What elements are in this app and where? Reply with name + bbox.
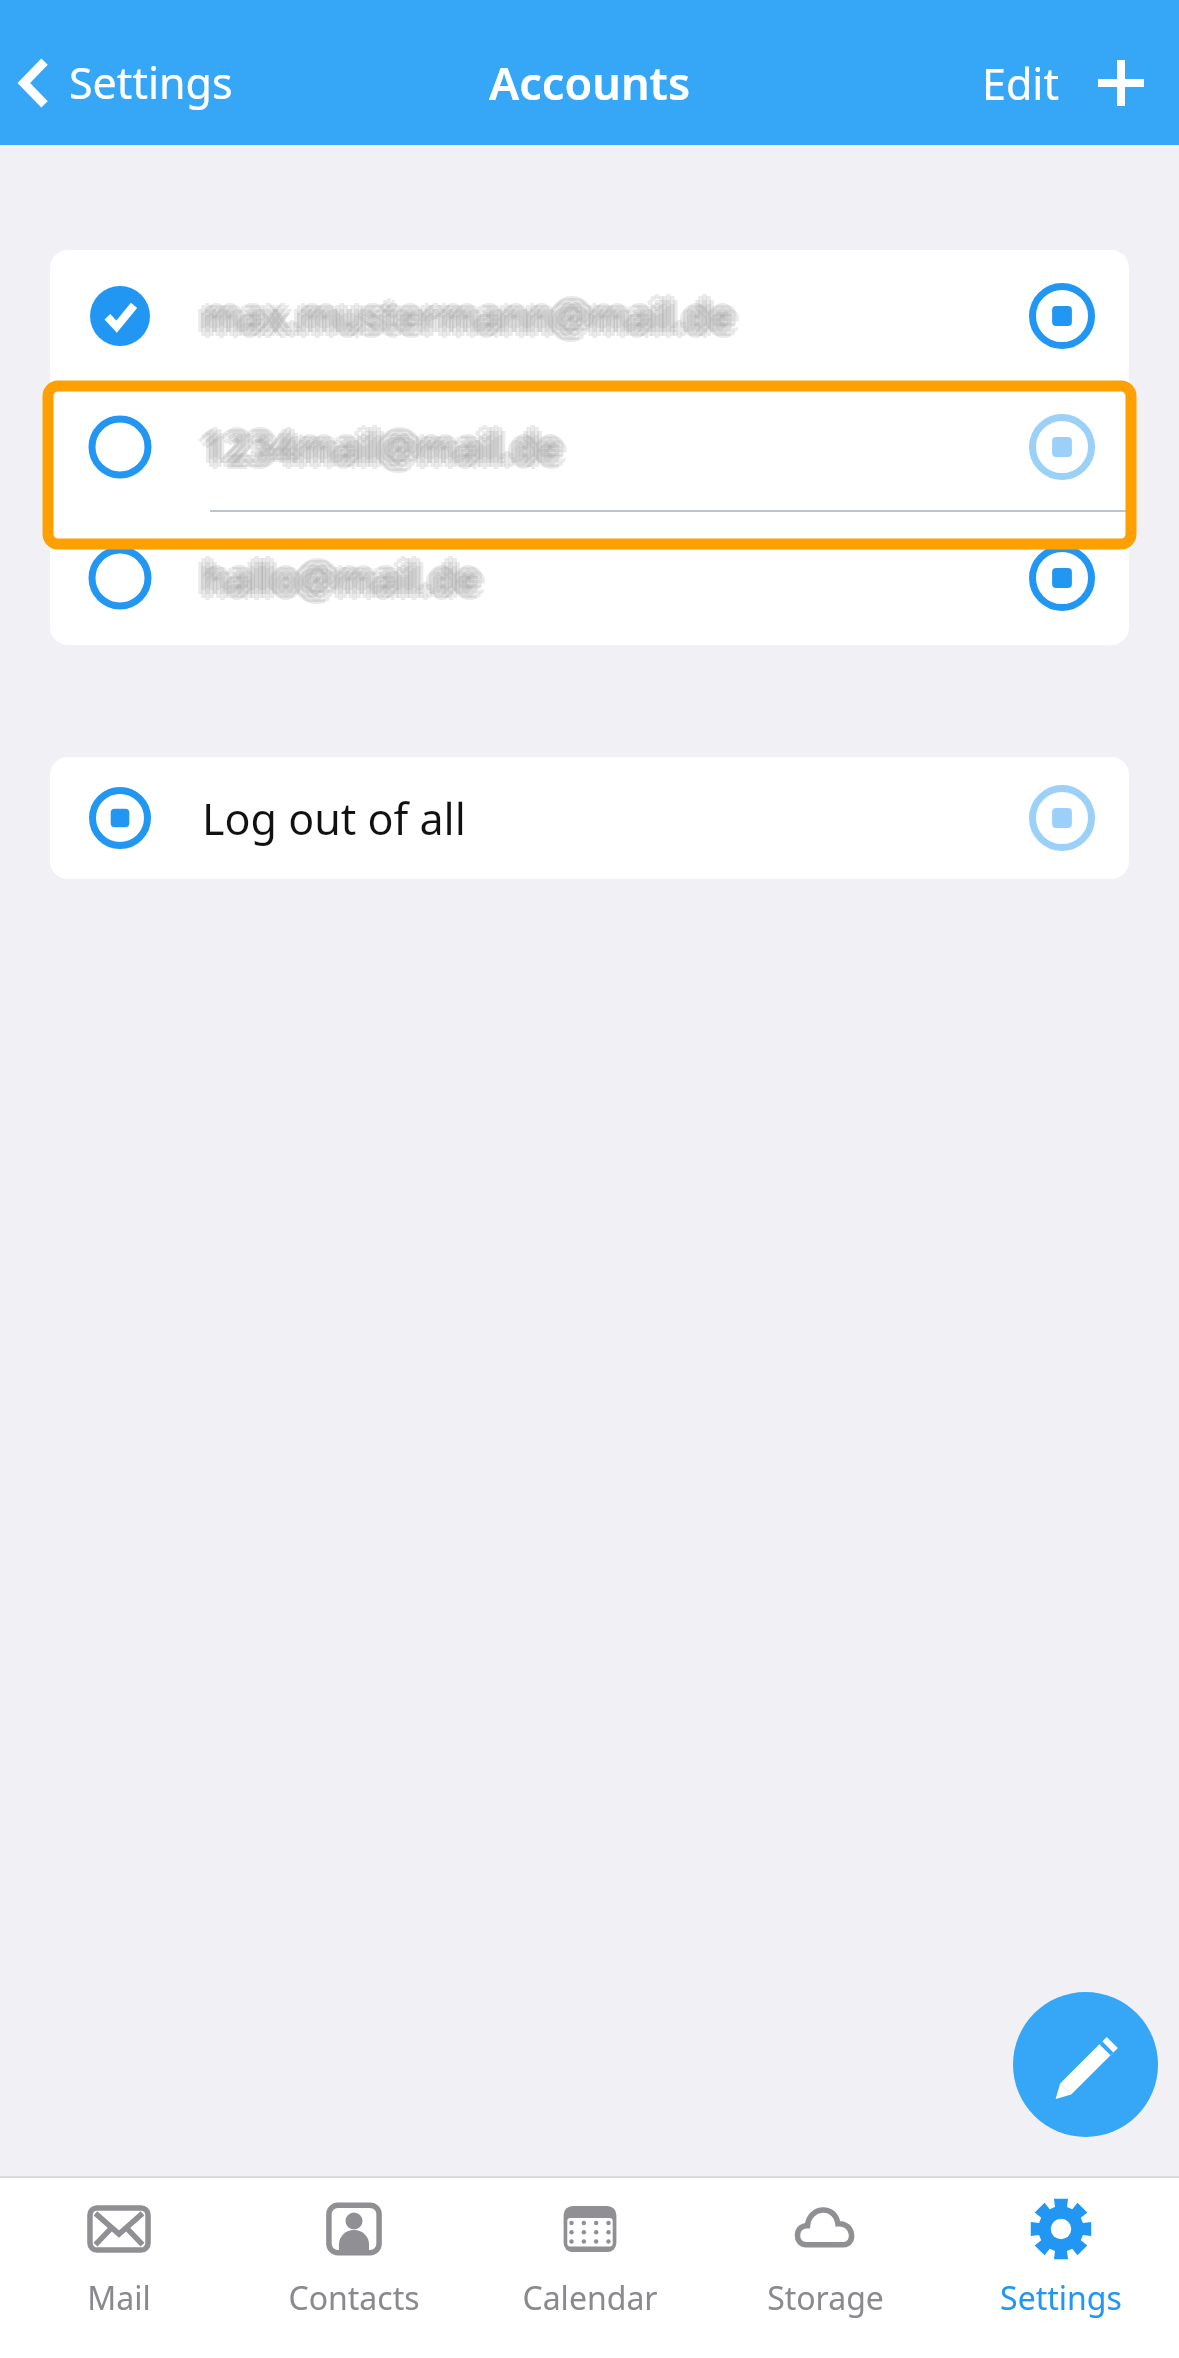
- staticText: Mail: [87, 2276, 151, 2320]
- staticText: hallo@mail.de: [206, 546, 484, 602]
- staticText: Edit: [982, 54, 1059, 113]
- staticText: 1234mail@mail.de: [206, 423, 566, 479]
- button[interactable]: Log out: [1007, 261, 1117, 371]
- staticText: max.mustermann@mail.de: [206, 284, 738, 340]
- button[interactable]: Settings: [943, 2178, 1178, 2358]
- other: Select account: [86, 544, 154, 612]
- button[interactable]: Compose: [1013, 1992, 1158, 2137]
- other: Select account: [86, 413, 154, 481]
- staticText: max.mustermann@mail.de: [209, 288, 741, 344]
- staticText: max.mustermann@mail.de: [202, 282, 734, 338]
- button[interactable]: Select account: [50, 381, 1129, 512]
- staticText: 1234mail@mail.de: [198, 423, 558, 479]
- staticText: max.mustermann@mail.de: [202, 294, 734, 350]
- button[interactable]: Select account: [50, 512, 1129, 643]
- staticText: max.mustermann@mail.de: [198, 292, 730, 348]
- staticText: 1234mail@mail.de: [206, 415, 566, 471]
- staticText: hallo@mail.de: [202, 556, 480, 612]
- button[interactable]: Selected account: [50, 250, 1129, 381]
- staticText: 1234mail@mail.de: [202, 413, 562, 469]
- staticText: Settings: [69, 53, 233, 112]
- staticText: hallo@mail.de: [198, 554, 476, 610]
- staticText: Settings: [1000, 2276, 1122, 2320]
- button[interactable]: Add account: [1073, 35, 1169, 131]
- staticText: max.mustermann@mail.de: [195, 288, 727, 344]
- staticText: hallo@mail.de: [202, 544, 480, 600]
- staticText: 1234mail@mail.de: [202, 419, 562, 475]
- staticText: 1234mail@mail.de: [195, 419, 555, 475]
- staticText: 1234mail@mail.de: [202, 425, 562, 481]
- staticText: hallo@mail.de: [206, 554, 484, 610]
- button[interactable]: Log out: [1007, 523, 1117, 633]
- button[interactable]: Settings: [0, 45, 247, 120]
- staticText: hallo@mail.de: [202, 550, 480, 606]
- button[interactable]: Log out of all: [50, 757, 1129, 879]
- staticText: Contacts: [288, 2276, 420, 2320]
- button[interactable]: Calendar: [472, 2178, 707, 2358]
- staticText: Calendar: [522, 2276, 658, 2320]
- button[interactable]: Contacts: [236, 2178, 471, 2358]
- staticText: hallo@mail.de: [209, 550, 487, 606]
- staticText: 1234mail@mail.de: [198, 415, 558, 471]
- staticText: max.mustermann@mail.de: [198, 284, 730, 340]
- staticText: 1234mail@mail.de: [209, 419, 569, 475]
- staticText: Storage: [767, 2276, 884, 2320]
- button[interactable]: Storage: [708, 2178, 943, 2358]
- button[interactable]: Mail: [1, 2178, 236, 2358]
- staticText: hallo@mail.de: [198, 546, 476, 602]
- staticText: Accounts: [489, 52, 691, 113]
- other: Selected account: [86, 282, 154, 350]
- staticText: max.mustermann@mail.de: [202, 288, 734, 344]
- button[interactable]: Edit: [968, 44, 1073, 123]
- button[interactable]: Log out of all: [1007, 763, 1117, 873]
- staticText: max.mustermann@mail.de: [206, 292, 738, 348]
- button[interactable]: Log out: [1007, 392, 1117, 502]
- staticText: hallo@mail.de: [195, 550, 473, 606]
- staticText: Log out of all: [202, 789, 466, 848]
